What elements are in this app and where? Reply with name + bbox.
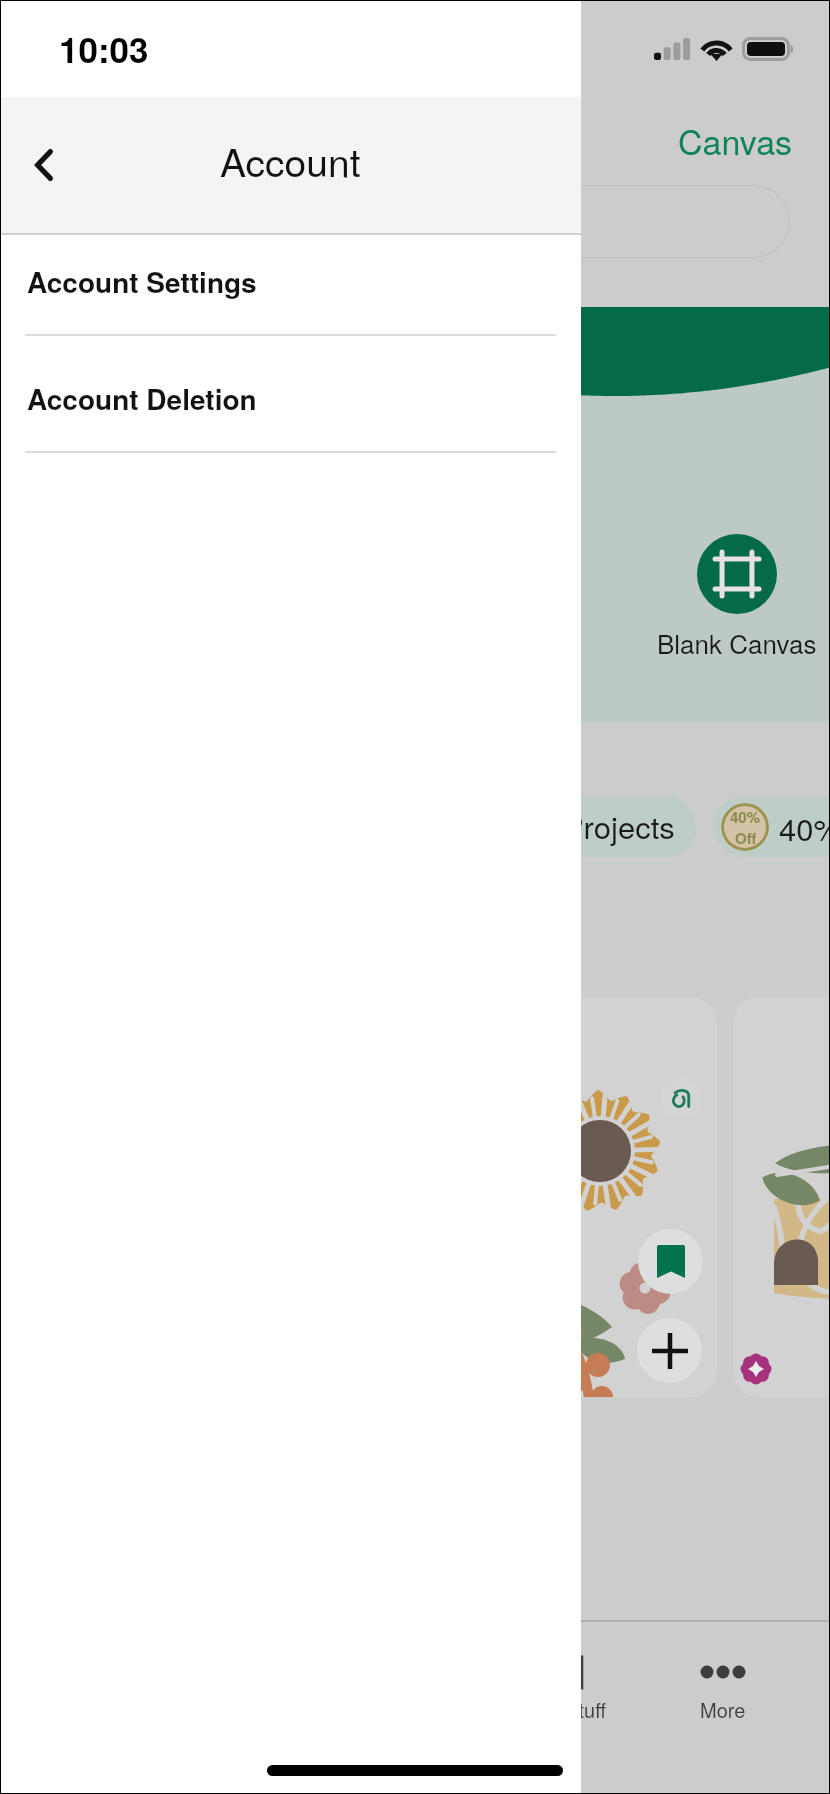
staticText: 10:03 xyxy=(59,24,149,74)
staticText: Blank Canvas xyxy=(657,624,817,661)
staticText: Account xyxy=(220,132,361,188)
staticText: Off xyxy=(735,827,757,848)
button[interactable]: Save xyxy=(638,1229,703,1294)
staticText: My Stuff xyxy=(533,1695,606,1724)
button[interactable]: Add xyxy=(637,1318,702,1383)
button[interactable]: My Stuff xyxy=(492,1622,646,1794)
staticText: Canvas xyxy=(678,116,793,165)
button[interactable]: Back xyxy=(0,97,88,233)
staticText: 40% Off xyxy=(779,805,830,849)
button[interactable]: Brand xyxy=(661,1078,701,1118)
button[interactable]: Blank Canvas xyxy=(617,534,830,661)
button[interactable]: More xyxy=(646,1622,800,1794)
button[interactable] xyxy=(733,997,830,1397)
button[interactable]: Account Deletion xyxy=(0,336,581,453)
button[interactable]: Search xyxy=(40,185,790,258)
button[interactable]: Shop xyxy=(338,1622,492,1794)
staticText: Account Deletion xyxy=(27,378,257,418)
staticText: Account Settings xyxy=(27,261,257,301)
button[interactable]: Home xyxy=(30,1622,184,1794)
staticText: 40% xyxy=(730,806,761,827)
staticText: More xyxy=(700,1695,746,1724)
button[interactable] xyxy=(470,997,717,1397)
button[interactable]: 40% xyxy=(714,796,830,857)
staticText: My Projects xyxy=(513,803,675,847)
button[interactable]: My Projects xyxy=(480,796,696,857)
button[interactable]: Account Settings xyxy=(0,235,581,336)
button[interactable]: Design xyxy=(184,1622,338,1794)
